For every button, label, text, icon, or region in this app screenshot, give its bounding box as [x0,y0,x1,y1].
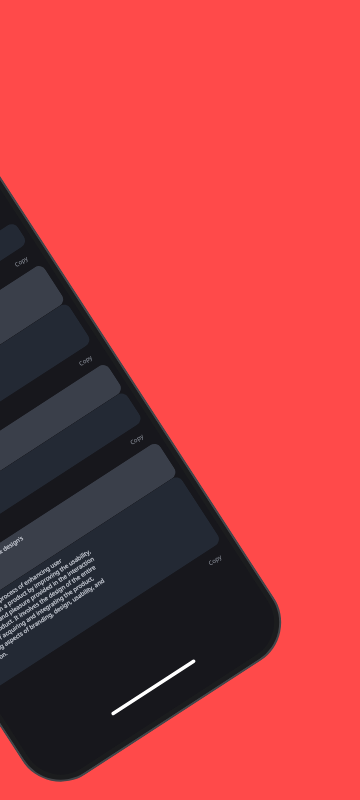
staticText: satisfaction with a product by improving… [0,547,93,636]
staticText: with the product. It involves the design… [0,563,97,649]
staticText: Copy [77,353,94,368]
staticText: UX design is the process of enhancing us… [0,557,63,629]
staticText: process of acquiring and integrating the… [0,574,96,656]
staticText: function. [0,649,10,670]
staticText: accessibility, and pleasure provided in … [0,554,96,643]
staticText: Copy [207,552,224,567]
button[interactable]: Copy [61,361,80,380]
button[interactable]: Copy [190,560,210,580]
button[interactable]: Copy [112,440,131,459]
button[interactable]: Copy [0,262,16,281]
staticText: Copy [13,254,30,269]
button[interactable]: Read aloud [95,450,114,470]
staticText: Copy [129,432,145,447]
staticText: what do you mean by ui Ux design's [0,534,25,596]
staticText: including aspects of branding, design, u… [0,577,106,663]
